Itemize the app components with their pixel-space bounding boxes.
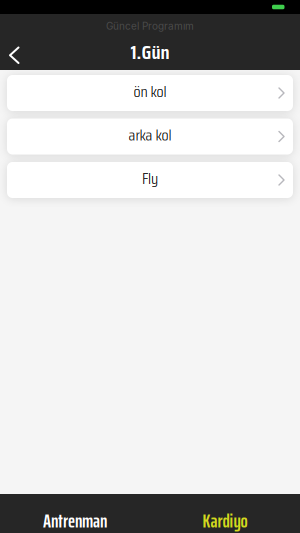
button[interactable]: Back bbox=[0, 42, 32, 68]
button[interactable]: Fly bbox=[7, 162, 293, 198]
button[interactable]: ön kol bbox=[7, 75, 293, 111]
staticText: Antrenman bbox=[43, 506, 107, 533]
staticText: 1.Gün bbox=[130, 36, 169, 68]
staticText: Fly bbox=[142, 166, 158, 191]
staticText: Kardiyo bbox=[202, 506, 247, 533]
button[interactable]: arka kol bbox=[7, 118, 293, 154]
staticText: ön kol bbox=[133, 79, 166, 104]
button[interactable]: Antrenman bbox=[0, 494, 150, 533]
staticText: Güncel Programım bbox=[106, 20, 194, 32]
button[interactable]: Kardiyo bbox=[150, 494, 300, 533]
staticText: arka kol bbox=[128, 122, 171, 148]
